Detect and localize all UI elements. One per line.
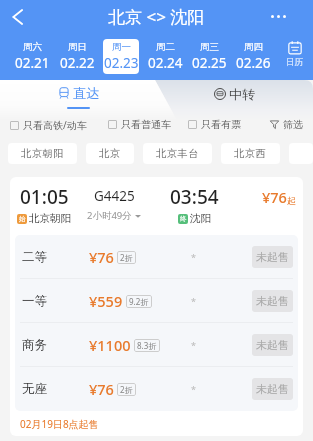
button[interactable]: 未起售	[252, 378, 293, 400]
button[interactable]: 北京西	[221, 143, 280, 164]
staticText: 北京 <> 沈阳	[108, 5, 205, 28]
staticText: 北京丰台	[156, 147, 199, 160]
staticText: 周四	[244, 41, 263, 53]
staticText: 一等	[22, 293, 47, 309]
staticText: 周六	[23, 41, 42, 53]
button[interactable]: 北京	[86, 143, 134, 164]
staticText: 北京朝阳	[21, 147, 64, 160]
button[interactable]: 未起售	[252, 334, 293, 356]
staticText: 周日	[68, 41, 87, 53]
staticText: 2折	[120, 252, 133, 263]
button[interactable]: Calendar	[275, 33, 313, 80]
staticText: 02.25	[192, 54, 227, 72]
staticText: 02.22	[60, 54, 95, 72]
staticText: 始	[19, 215, 26, 223]
staticText: 日历	[286, 57, 303, 68]
button[interactable]: 周六	[9, 33, 54, 80]
button[interactable]: 中转	[156, 80, 313, 111]
staticText: ¥1100	[89, 335, 131, 355]
button[interactable]: 周一	[99, 33, 143, 80]
staticText: 北京朝阳	[29, 212, 71, 225]
staticText: 未起售	[256, 382, 289, 396]
button[interactable]: 01:05	[10, 177, 303, 235]
staticText: 北京西	[234, 147, 267, 160]
staticText: ¥76	[262, 187, 287, 207]
staticText: 9.2折	[129, 296, 149, 307]
button[interactable]: 筛选	[270, 118, 303, 131]
staticText: G4425	[94, 187, 135, 205]
button[interactable]: 只看有票	[188, 118, 241, 131]
staticText: 无座	[22, 381, 47, 397]
staticText: 未起售	[256, 250, 289, 264]
staticText: 中转	[229, 86, 255, 102]
button[interactable]: More options	[266, 0, 313, 33]
staticText: 02.23	[104, 54, 139, 72]
staticText: 周三	[200, 41, 219, 53]
staticText: 02月19日8点起售	[20, 417, 99, 431]
staticText: 周二	[156, 41, 175, 53]
staticText: 02.24	[148, 54, 183, 72]
button[interactable]: 未起售	[252, 290, 293, 312]
button[interactable]: 一等	[15, 279, 298, 323]
staticText: ¥76	[89, 379, 114, 399]
staticText: 只看普通车	[121, 118, 171, 131]
staticText: 01:05	[20, 184, 69, 210]
staticText: 起	[287, 195, 296, 206]
staticText: *	[191, 339, 196, 351]
button[interactable]: 只看高铁/动车	[10, 118, 87, 132]
staticText: 8.3折	[137, 340, 157, 351]
staticText: ¥76	[89, 247, 114, 267]
staticText: 2小时49分	[87, 209, 132, 222]
staticText: 二等	[22, 249, 47, 265]
staticText: 只看高铁/动车	[23, 118, 87, 132]
staticText: 02.21	[15, 54, 50, 72]
button[interactable]: 商务	[15, 323, 298, 367]
button[interactable]: 周日	[54, 33, 99, 80]
staticText: 只看有票	[201, 118, 241, 131]
button[interactable]: Back	[0, 0, 34, 33]
staticText: 2折	[120, 384, 133, 395]
staticText: ¥559	[89, 291, 123, 311]
staticText: 北京	[99, 147, 121, 160]
button[interactable]: 周三	[187, 33, 231, 80]
button[interactable]: 周四	[231, 33, 275, 80]
staticText: 终	[180, 215, 187, 223]
button[interactable]: 未起售	[252, 246, 293, 268]
button[interactable]: 二等	[15, 235, 298, 279]
staticText: 筛选	[283, 118, 303, 131]
button[interactable]: 只看普通车	[108, 118, 171, 131]
staticText: 未起售	[256, 294, 289, 308]
button[interactable]: 直达	[0, 80, 156, 111]
staticText: 未起售	[256, 338, 289, 352]
staticText: *	[191, 295, 196, 307]
staticText: 03:54	[170, 184, 219, 210]
button[interactable]: 北京朝阳	[8, 143, 77, 164]
button[interactable]: 周二	[143, 33, 187, 80]
staticText: 沈阳	[190, 212, 211, 225]
button[interactable]: 北京丰台	[143, 143, 212, 164]
button[interactable]: 无座	[15, 367, 298, 411]
staticText: 直达	[73, 85, 99, 101]
staticText: 商务	[22, 337, 47, 353]
staticText: *	[191, 251, 196, 263]
staticText: 02.26	[236, 54, 271, 72]
staticText: *	[191, 383, 196, 395]
staticText: 周一	[112, 41, 131, 53]
